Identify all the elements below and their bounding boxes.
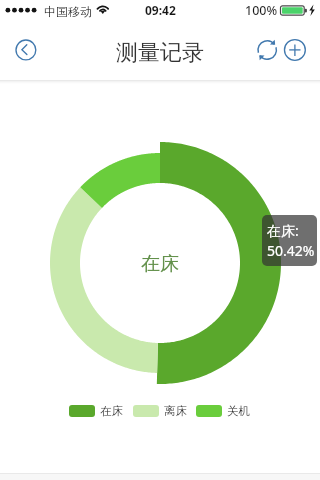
button[interactable]: Refresh bbox=[255, 38, 279, 62]
staticText: 在床: bbox=[267, 221, 299, 240]
button[interactable]: Add bbox=[283, 38, 307, 62]
staticText: 离床 bbox=[164, 404, 187, 418]
staticText: 100% bbox=[245, 2, 278, 19]
button[interactable]: 离床 bbox=[133, 404, 187, 418]
button[interactable]: 在床 bbox=[69, 404, 123, 418]
staticText: 50.42% bbox=[267, 241, 315, 260]
staticText: 中国移动 bbox=[44, 4, 92, 19]
staticText: 在床 bbox=[100, 404, 123, 418]
staticText: 测量记录 bbox=[116, 39, 204, 67]
button[interactable]: Back bbox=[14, 38, 38, 62]
staticText: 09:42 bbox=[145, 2, 176, 18]
staticText: 关机 bbox=[227, 404, 250, 418]
button[interactable]: 关机 bbox=[196, 404, 250, 418]
staticText: 在床 bbox=[141, 252, 179, 276]
